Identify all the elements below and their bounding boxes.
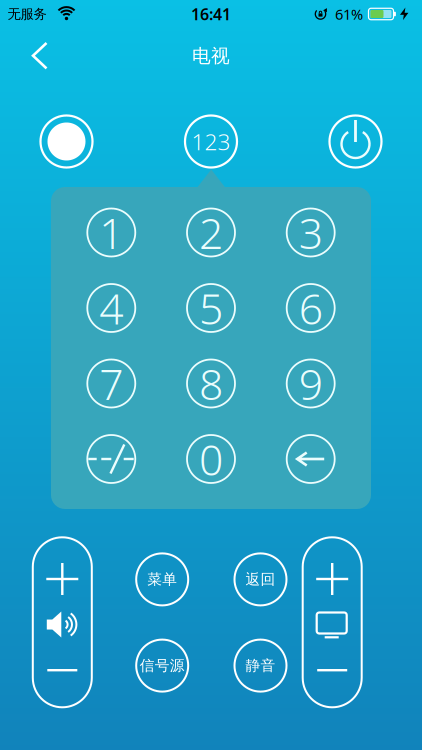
staticText: 16:41 bbox=[191, 3, 231, 25]
staticText: 5 bbox=[199, 280, 223, 336]
button[interactable]: Volume down bbox=[40, 658, 84, 682]
staticText: 电视 bbox=[192, 44, 230, 67]
button[interactable]: 3 bbox=[287, 208, 335, 256]
staticText: 61% bbox=[335, 4, 363, 24]
button[interactable]: 4 bbox=[87, 284, 135, 332]
button[interactable]: Channel down bbox=[310, 658, 354, 682]
button[interactable]: 6 bbox=[287, 284, 335, 332]
staticText: 2 bbox=[199, 204, 223, 261]
button[interactable]: 菜单 bbox=[136, 553, 188, 605]
button[interactable]: Channel up bbox=[310, 557, 354, 601]
button[interactable]: 1 bbox=[87, 208, 135, 256]
button[interactable]: 9 bbox=[287, 359, 335, 407]
button[interactable]: 2 bbox=[187, 208, 235, 256]
button[interactable]: Delete bbox=[287, 435, 335, 483]
staticText: 8 bbox=[199, 355, 223, 412]
button[interactable]: 7 bbox=[87, 359, 135, 407]
button[interactable]: 8 bbox=[187, 359, 235, 407]
button[interactable]: 0 bbox=[187, 435, 235, 483]
staticText: 7 bbox=[99, 355, 123, 412]
staticText: 静音 bbox=[245, 657, 275, 675]
staticText: 3 bbox=[299, 204, 323, 261]
button[interactable]: 信号源 bbox=[136, 640, 188, 692]
button[interactable]: Back bbox=[18, 36, 62, 76]
staticText: 123 bbox=[191, 126, 230, 156]
staticText: 4 bbox=[99, 280, 123, 336]
button[interactable]: Record bbox=[40, 115, 92, 167]
staticText: 1 bbox=[99, 204, 123, 261]
staticText: 信号源 bbox=[140, 657, 185, 675]
button[interactable]: 返回 bbox=[234, 553, 286, 605]
button[interactable]: Volume up bbox=[40, 557, 84, 601]
staticText: 0 bbox=[199, 431, 223, 487]
button[interactable]: 5 bbox=[187, 284, 235, 332]
staticText: 无服务 bbox=[7, 6, 46, 22]
button[interactable]: 静音 bbox=[234, 640, 286, 692]
staticText: 返回 bbox=[245, 570, 275, 588]
button[interactable]: -/- bbox=[87, 435, 135, 483]
button[interactable]: Power bbox=[329, 115, 381, 167]
button[interactable]: Number pad bbox=[185, 115, 237, 167]
staticText: 9 bbox=[299, 355, 323, 412]
staticText: 菜单 bbox=[147, 570, 177, 588]
staticText: 6 bbox=[299, 280, 323, 336]
